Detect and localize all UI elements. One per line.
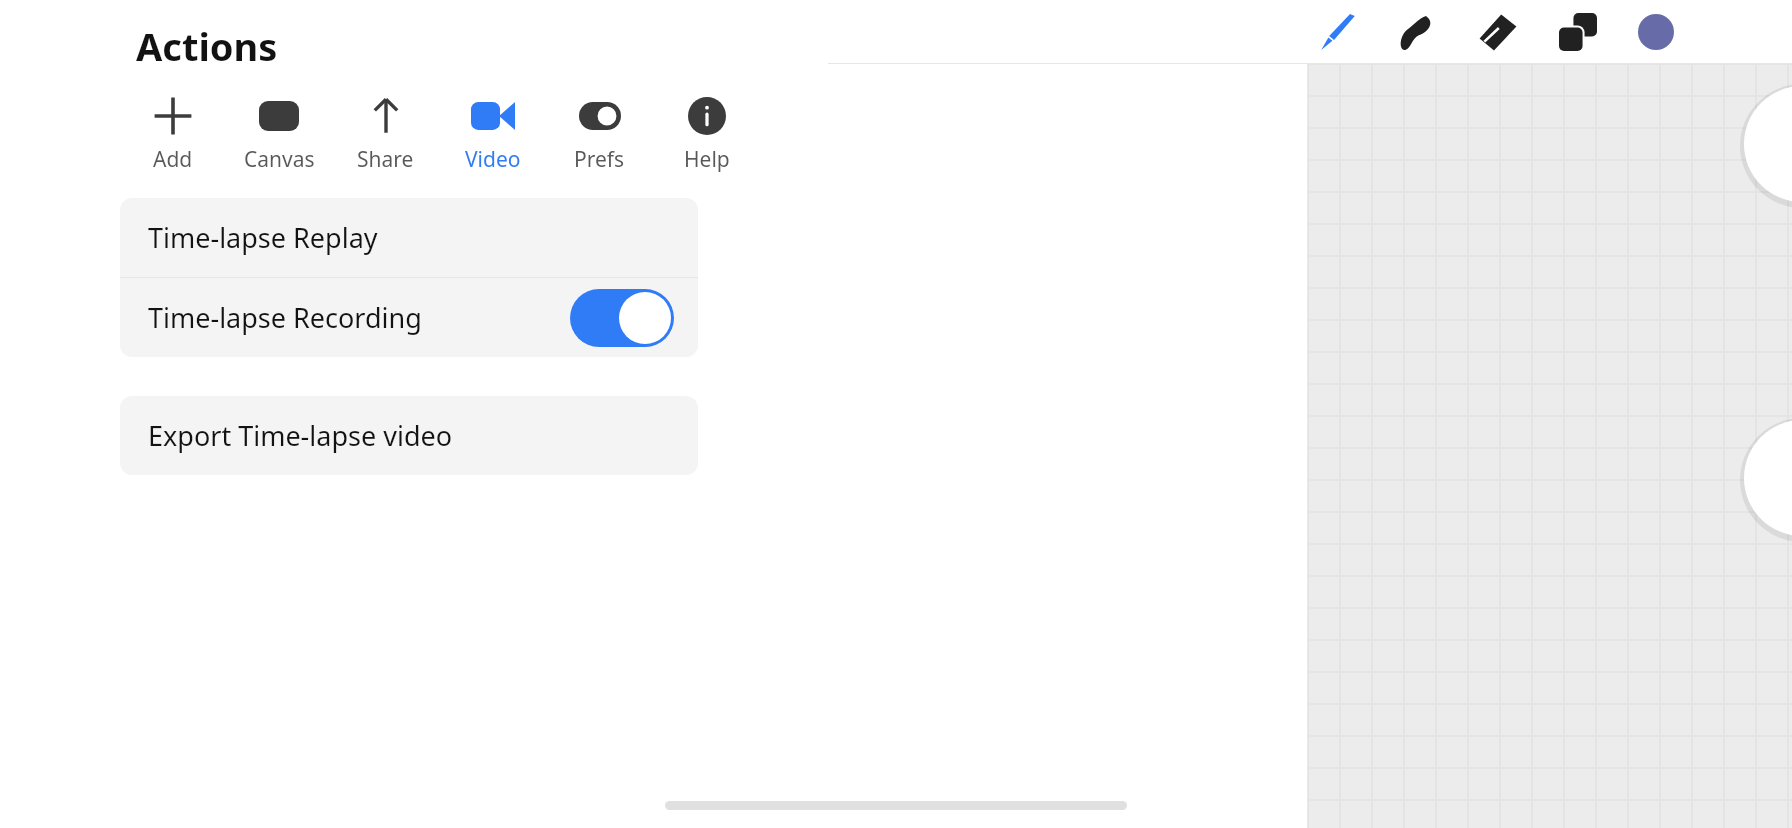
button[interactable]: Colour [1628, 4, 1684, 60]
button[interactable]: Video [439, 90, 546, 178]
button[interactable]: Time-lapse Recording [120, 278, 698, 357]
staticText: Canvas [244, 145, 315, 174]
button[interactable]: Canvas [226, 90, 332, 178]
staticText: Time-lapse Replay [148, 219, 378, 256]
button[interactable]: Time-lapse Recording toggle [570, 289, 674, 347]
button[interactable]: Eraser [1470, 4, 1526, 60]
button[interactable]: Smudge [1390, 4, 1446, 60]
button[interactable]: Prefs [546, 90, 653, 178]
button[interactable]: Brush [1310, 4, 1366, 60]
staticText: Add [153, 145, 193, 174]
button[interactable]: Layers [1550, 4, 1606, 60]
button[interactable]: Help [653, 90, 760, 178]
button[interactable]: Time-lapse Replay [120, 198, 698, 277]
button[interactable]: Add [120, 90, 226, 178]
staticText: Export Time-lapse video [148, 417, 453, 454]
staticText: Video [465, 145, 521, 174]
staticText: Help [684, 145, 730, 174]
staticText: Actions [136, 20, 278, 72]
staticText: Prefs [574, 145, 625, 174]
button[interactable]: Share [332, 90, 439, 178]
staticText: Share [357, 145, 414, 174]
button[interactable]: Export Time-lapse video [120, 396, 698, 475]
staticText: Time-lapse Recording [148, 299, 422, 336]
